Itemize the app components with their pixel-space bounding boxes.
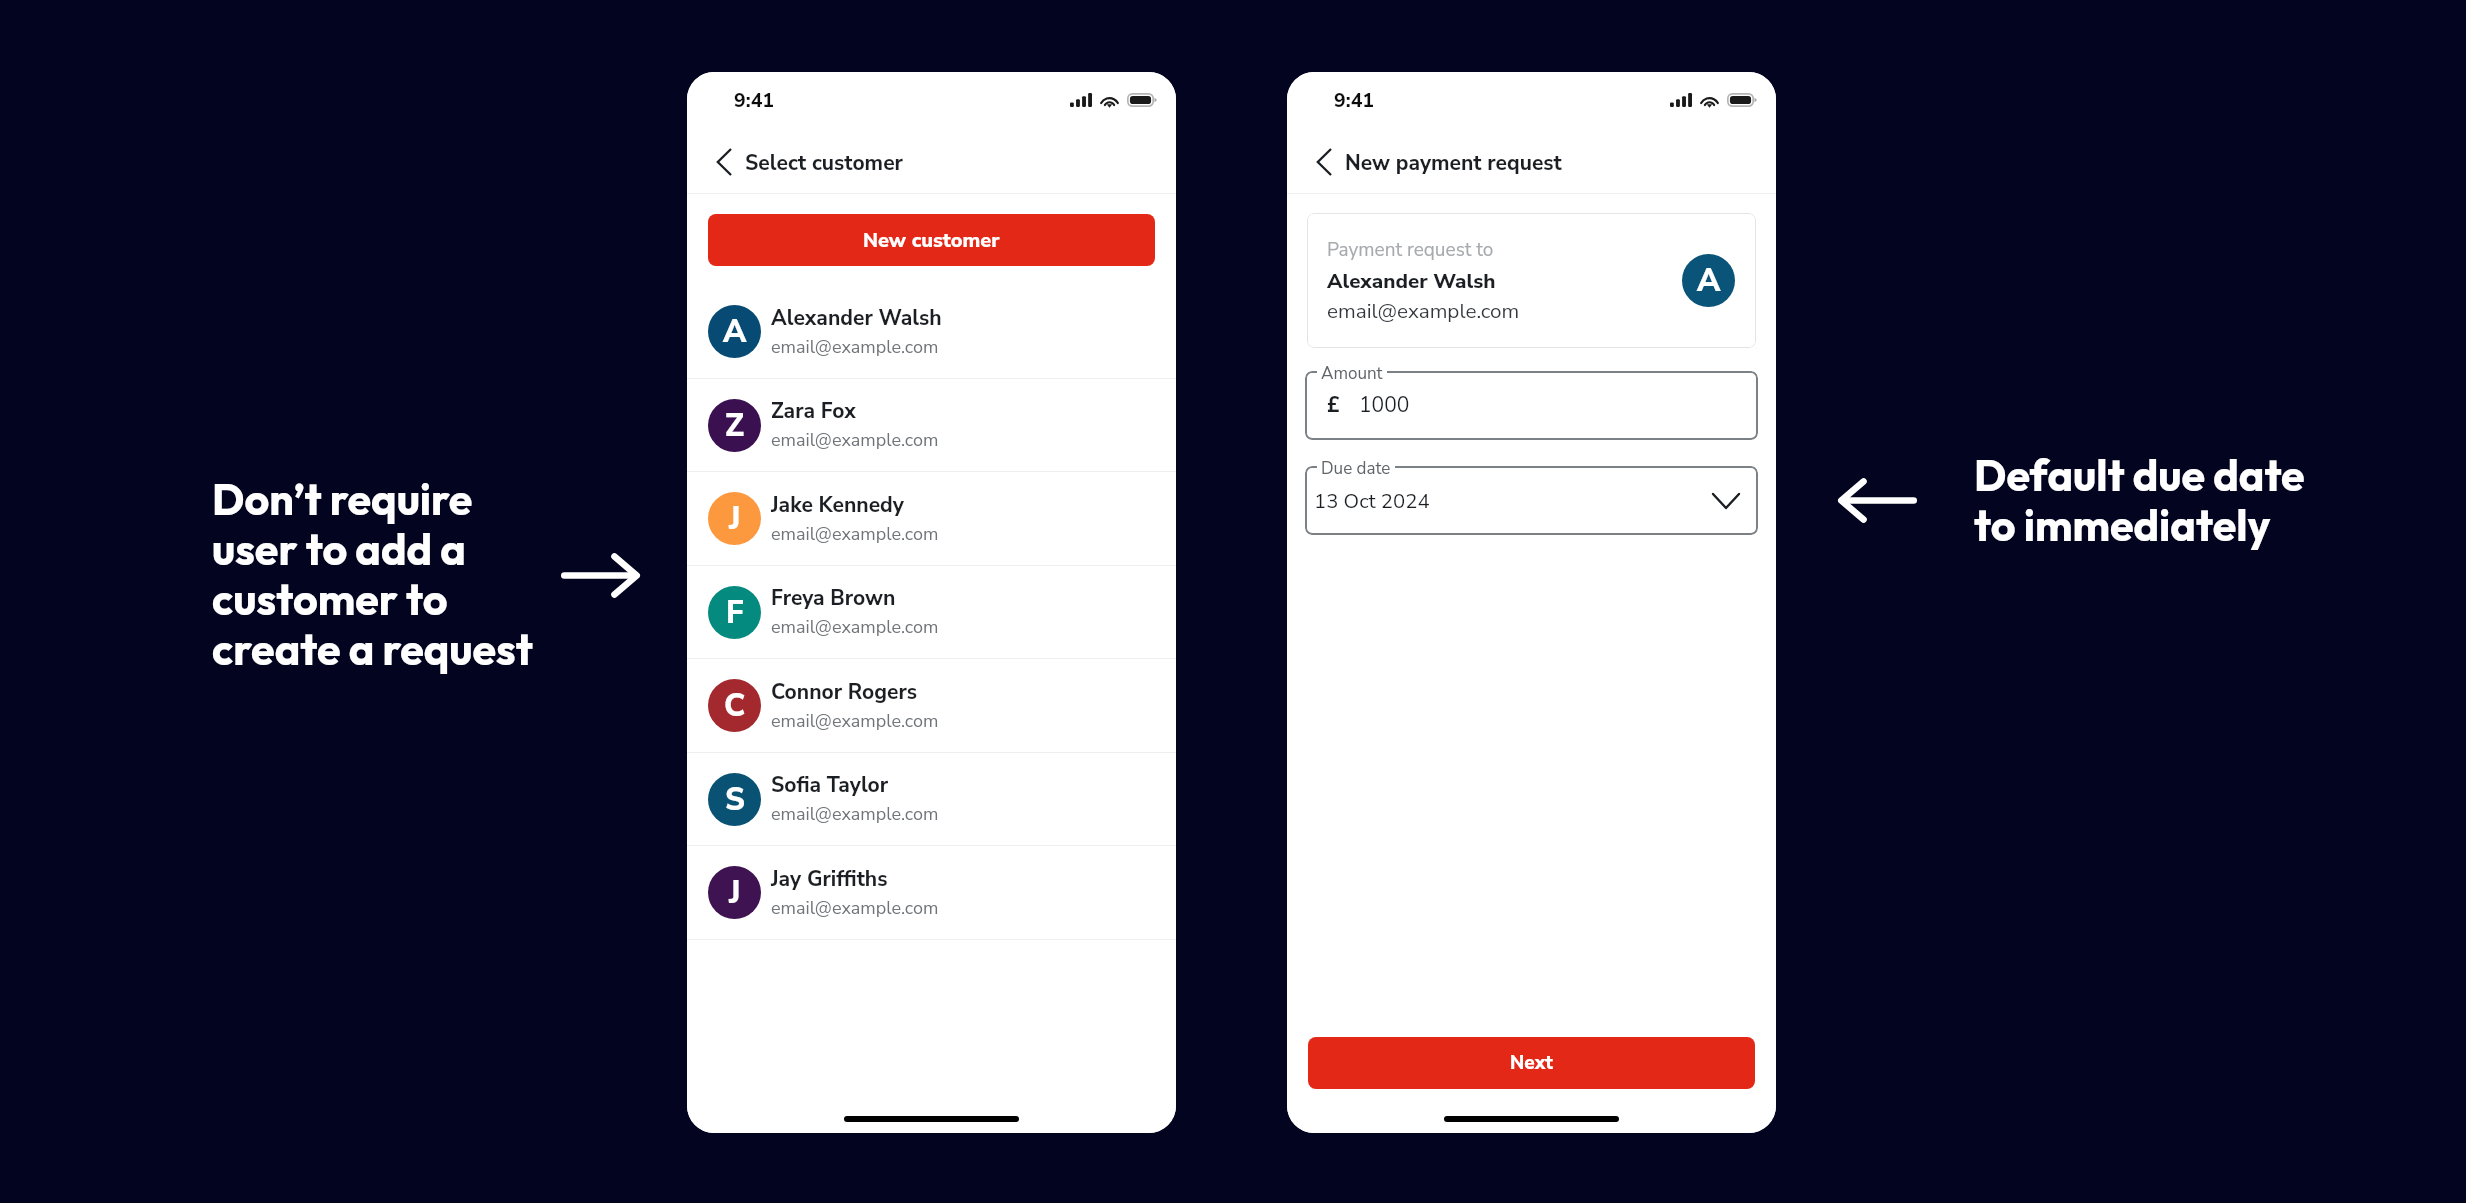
button[interactable]: Z xyxy=(687,379,1176,471)
staticText: email@example.com xyxy=(771,428,939,453)
staticText: email@example.com xyxy=(1327,297,1520,325)
staticText: J xyxy=(729,498,741,540)
staticText: A xyxy=(1697,260,1721,302)
staticText: 1000 xyxy=(1359,391,1410,420)
staticText: Next xyxy=(1510,1050,1553,1076)
button[interactable]: J xyxy=(687,472,1176,565)
button[interactable]: Back xyxy=(703,143,745,185)
button[interactable]: £ xyxy=(1305,371,1758,440)
staticText: F xyxy=(726,592,744,634)
staticText: Connor Rogers xyxy=(771,678,918,707)
staticText: Don’t require user to add a customer to … xyxy=(212,472,533,676)
staticText: Alexander Walsh xyxy=(1327,267,1496,295)
staticText: email@example.com xyxy=(771,896,939,921)
staticText: 9:41 xyxy=(734,87,775,114)
staticText: Z xyxy=(725,405,745,447)
staticText: 13 Oct 2024 xyxy=(1314,487,1430,515)
button[interactable]: New customer xyxy=(708,214,1155,266)
staticText: Alexander Walsh xyxy=(771,304,942,333)
staticText: New customer xyxy=(863,227,1000,254)
button[interactable]: J xyxy=(687,846,1176,939)
staticText: Payment request to xyxy=(1327,237,1494,263)
staticText: Due date xyxy=(1321,457,1391,480)
staticText: Default due date to immediately xyxy=(1974,448,2305,552)
button[interactable]: C xyxy=(687,659,1176,752)
staticText: J xyxy=(729,872,741,914)
staticText: C xyxy=(724,685,746,727)
button[interactable]: S xyxy=(687,753,1176,845)
staticText: Freya Brown xyxy=(771,584,896,613)
button[interactable]: F xyxy=(687,566,1176,658)
staticText: A xyxy=(723,311,747,353)
staticText: email@example.com xyxy=(771,709,939,734)
staticText: email@example.com xyxy=(771,335,939,360)
staticText: Sofia Taylor xyxy=(771,771,889,800)
button[interactable]: Back xyxy=(1303,143,1345,185)
staticText: Jake Kennedy xyxy=(771,491,904,520)
staticText: New payment request xyxy=(1345,149,1562,178)
button[interactable]: Next xyxy=(1308,1037,1755,1089)
staticText: £ xyxy=(1327,391,1340,420)
button[interactable]: 13 Oct 2024 xyxy=(1305,466,1758,535)
staticText: email@example.com xyxy=(771,615,939,640)
staticText: 9:41 xyxy=(1334,87,1375,114)
staticText: Amount xyxy=(1321,362,1383,385)
staticText: email@example.com xyxy=(771,802,939,827)
staticText: Select customer xyxy=(745,149,903,178)
staticText: email@example.com xyxy=(771,522,939,547)
other: Choose date xyxy=(1709,484,1743,518)
button[interactable]: Payment request to xyxy=(1307,213,1756,348)
staticText: Zara Fox xyxy=(771,397,856,426)
button[interactable]: A xyxy=(687,285,1176,378)
staticText: S xyxy=(725,779,745,821)
staticText: Jay Griffiths xyxy=(771,865,888,894)
